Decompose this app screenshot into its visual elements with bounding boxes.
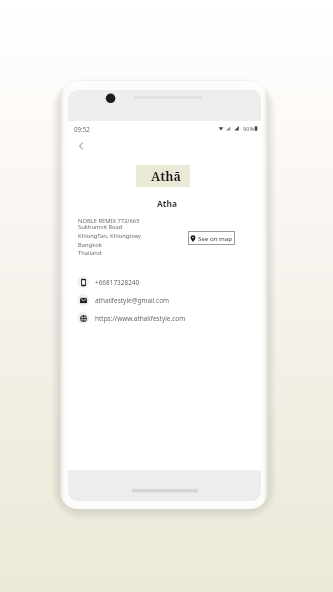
staticText: Sukhumvit Road xyxy=(78,223,123,231)
button[interactable]: Back xyxy=(74,139,88,153)
staticText: See on map xyxy=(198,234,233,242)
staticText: 90% xyxy=(243,125,255,133)
staticText: https://www.athalifestyle.com xyxy=(95,314,186,323)
button[interactable]: See on map xyxy=(188,231,235,245)
staticText: 09:52 xyxy=(74,125,90,133)
button[interactable]: https://www.athalifestyle.com xyxy=(77,312,197,324)
button[interactable]: +66817328240 xyxy=(77,276,197,288)
staticText: athalifestyle@gmail.com xyxy=(95,296,170,305)
staticText: Bangkok xyxy=(78,241,102,249)
staticText: Atha xyxy=(157,198,177,209)
staticText: +66817328240 xyxy=(95,278,140,287)
staticText: KhlongTan, Khlongtoey xyxy=(78,232,142,240)
staticText: Athā xyxy=(151,168,182,185)
staticText: NOBLE REMIX 772/665 xyxy=(78,217,140,225)
button[interactable]: athalifestyle@gmail.com xyxy=(77,294,197,306)
staticText: Thailand xyxy=(78,249,102,257)
